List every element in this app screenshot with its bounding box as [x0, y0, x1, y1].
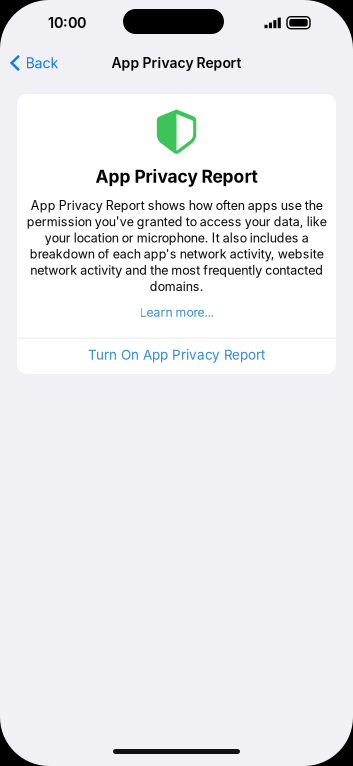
staticText: 10:00 — [48, 14, 86, 31]
staticText: Turn On App Privacy Report — [88, 347, 265, 363]
staticText: Learn more... — [139, 305, 213, 320]
button[interactable]: Back — [0, 46, 68, 80]
staticText: App Privacy Report — [111, 55, 241, 71]
button[interactable]: Turn On App Privacy Report — [17, 339, 336, 374]
staticText: Back — [25, 54, 58, 72]
button[interactable]: Learn more... — [17, 297, 336, 328]
staticText: App Privacy Report shows how often apps … — [26, 198, 326, 294]
staticText: App Privacy Report — [95, 166, 257, 187]
